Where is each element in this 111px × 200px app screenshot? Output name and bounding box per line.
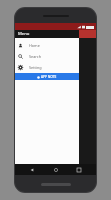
button[interactable]: Setting: [15, 62, 79, 73]
staticText: Home: [29, 43, 40, 48]
staticText: Setting: [29, 65, 42, 70]
button[interactable]: Search: [15, 51, 79, 62]
button[interactable]: Back: [25, 164, 39, 175]
button[interactable]: Recent apps: [72, 164, 86, 175]
staticText: Search: [29, 54, 42, 59]
staticText: APP NOTE: [41, 75, 57, 79]
staticText: Menu: [18, 31, 30, 37]
button[interactable]: Home: [15, 40, 79, 51]
button[interactable]: Home: [49, 164, 63, 175]
button[interactable]: APP NOTE: [15, 73, 79, 80]
